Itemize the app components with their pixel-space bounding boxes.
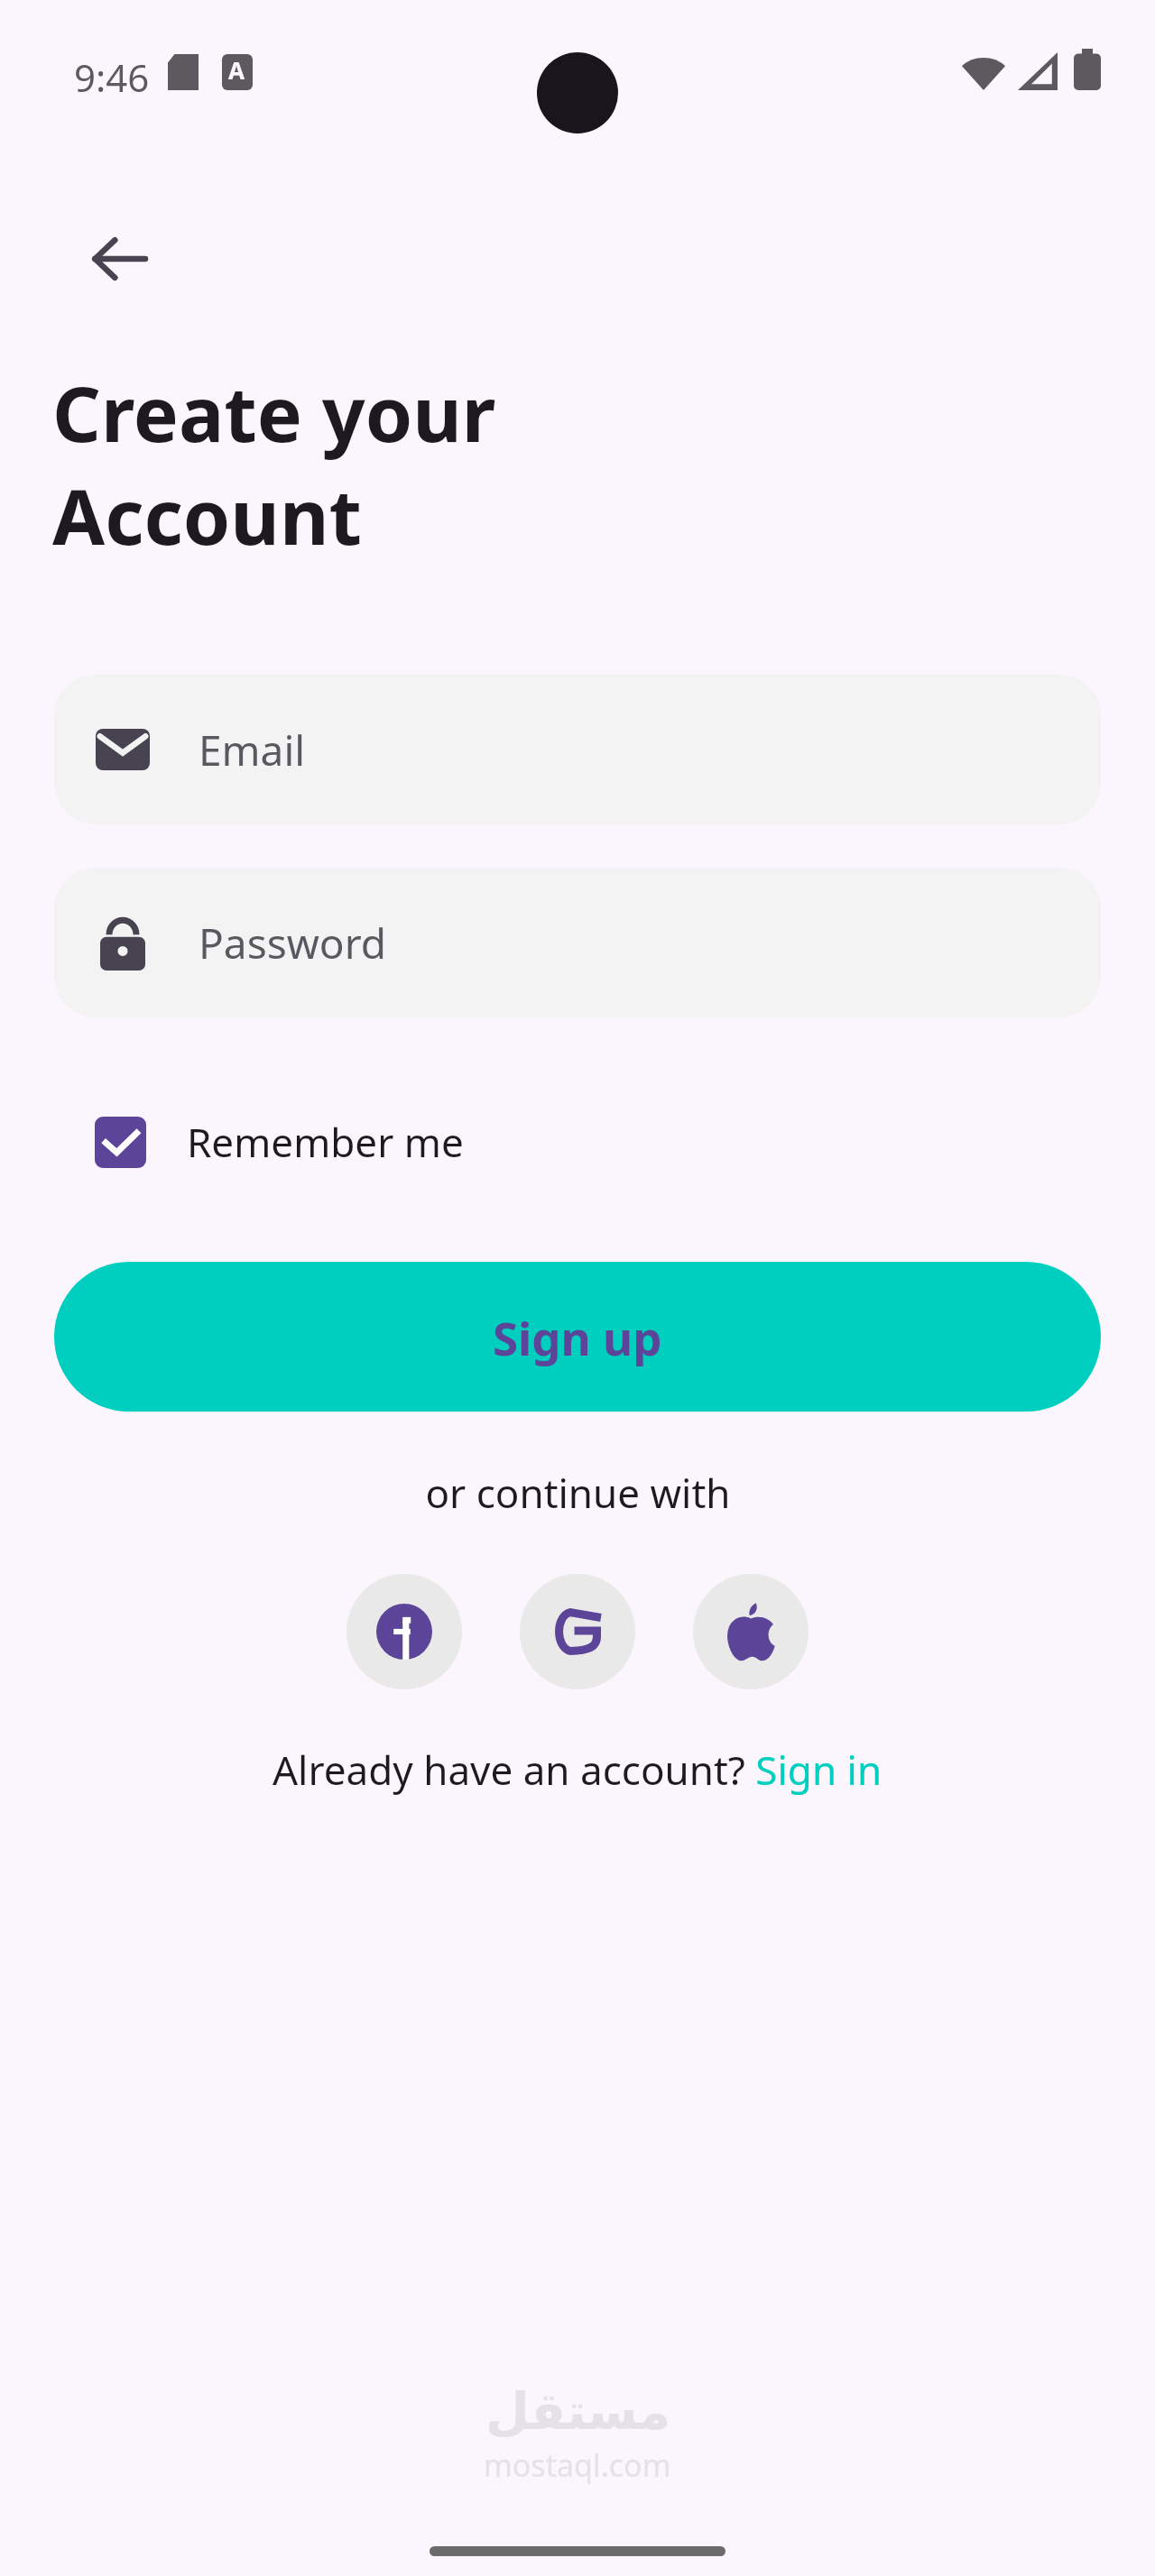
staticText: Email [199,722,306,778]
staticText: 9:46 [74,51,150,103]
staticText: Already have an account? Sign in [273,1743,882,1797]
button[interactable]: Sign up [54,1262,1101,1412]
staticText: Create your [52,361,496,464]
staticText: mostaql.com [484,2444,671,2486]
button[interactable]: Sign up with Apple [693,1574,808,1689]
staticText: Account [52,464,362,566]
button[interactable]: Email [54,675,1101,824]
button[interactable]: Password [54,868,1101,1017]
button[interactable]: Back [70,210,168,308]
button[interactable]: Sign up with Google [520,1574,635,1689]
staticText: Remember me [187,1115,464,1169]
staticText: or continue with [425,1466,731,1520]
staticText: Sign up [493,1306,662,1368]
staticText: مستقل [485,2382,670,2441]
staticText: Password [199,915,387,971]
staticText: A [228,54,245,86]
button[interactable]: Remember me [78,1099,464,1184]
button[interactable]: Already have an account? Sign in [273,1743,882,1797]
button[interactable]: Sign up with Facebook [346,1574,462,1689]
